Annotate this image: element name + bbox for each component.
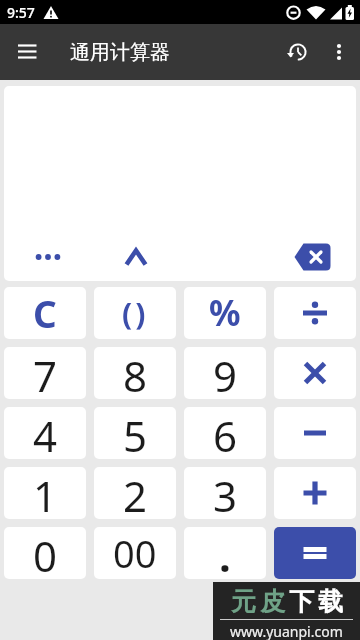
staticText: 7 [33, 347, 58, 399]
button[interactable] [274, 407, 356, 459]
button[interactable]: 3 [184, 467, 266, 519]
staticText: 5 [123, 407, 148, 459]
staticText: 1 [33, 467, 58, 519]
button[interactable]: () [94, 287, 176, 339]
button[interactable]: 6 [184, 407, 266, 459]
staticText: C [33, 288, 57, 338]
staticText: . [219, 527, 231, 579]
staticText: 2 [123, 467, 148, 519]
staticText: www.yuanpi.com [230, 622, 343, 640]
staticText: 00 [113, 527, 157, 579]
staticText: 3 [213, 467, 238, 519]
button[interactable]: C [4, 287, 86, 339]
staticText: 4 [33, 407, 58, 459]
button[interactable] [10, 34, 46, 70]
button[interactable]: 8 [94, 347, 176, 399]
button[interactable]: 0 [4, 527, 86, 579]
button[interactable] [92, 232, 180, 281]
button[interactable]: 1 [4, 467, 86, 519]
staticText: 9 [213, 347, 238, 399]
button[interactable]: 4 [4, 407, 86, 459]
staticText: 通用计算器 [70, 40, 170, 65]
button[interactable] [274, 467, 356, 519]
button[interactable]: 2 [94, 467, 176, 519]
button[interactable]: . [184, 527, 266, 579]
button[interactable]: 00 [94, 527, 176, 579]
staticText: 6 [213, 407, 238, 459]
staticText: 9:57 [7, 3, 35, 22]
button[interactable]: 7 [4, 347, 86, 399]
button[interactable] [274, 527, 356, 579]
staticText: 元皮下载 [229, 586, 345, 617]
button[interactable] [274, 287, 356, 339]
button[interactable]: 9 [184, 347, 266, 399]
button[interactable]: 5 [94, 407, 176, 459]
button[interactable]: % [184, 287, 266, 339]
button[interactable] [274, 347, 356, 399]
button[interactable] [286, 32, 326, 72]
staticText: % [209, 289, 241, 337]
staticText: 8 [123, 347, 148, 399]
staticText: 0 [33, 527, 58, 579]
button[interactable] [326, 35, 360, 69]
button[interactable] [268, 232, 356, 281]
staticText: () [122, 293, 149, 334]
button[interactable] [4, 232, 92, 281]
